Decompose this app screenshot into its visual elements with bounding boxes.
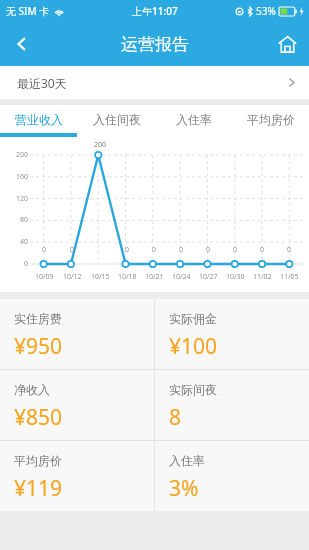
staticText: 3%: [169, 474, 199, 503]
staticText: 0: [233, 245, 238, 255]
staticText: ¥850: [14, 403, 63, 432]
staticText: 运营报告: [121, 34, 189, 55]
button[interactable]: 平均房价: [0, 441, 154, 511]
staticText: 11/05: [280, 272, 299, 282]
staticText: 80: [19, 215, 28, 225]
staticText: 11/02: [253, 272, 272, 282]
staticText: 120: [15, 194, 28, 204]
staticText: ¥950: [14, 332, 63, 361]
staticText: 40: [19, 237, 28, 247]
staticText: 10/24: [172, 272, 191, 282]
staticText: 上午11:07: [132, 4, 178, 18]
staticText: 0: [287, 245, 292, 255]
staticText: 10/09: [35, 272, 54, 282]
staticText: 8: [169, 403, 182, 432]
staticText: 实际佣金: [169, 311, 217, 326]
staticText: 净收入: [14, 382, 50, 397]
staticText: ¥100: [169, 332, 218, 361]
staticText: 最近30天: [17, 75, 67, 91]
staticText: 200: [15, 150, 28, 160]
button[interactable]: 实住房费: [0, 299, 154, 369]
staticText: 实住房费: [14, 311, 62, 326]
staticText: 平均房价: [14, 453, 62, 468]
button[interactable]: 入住率: [155, 105, 232, 133]
button[interactable]: 入住间夜: [78, 105, 155, 133]
button[interactable]: 最近30天: [0, 66, 309, 99]
staticText: 0: [42, 245, 47, 255]
staticText: 200: [94, 140, 107, 150]
button[interactable]: 平均房价: [232, 105, 309, 133]
button[interactable]: 实际佣金: [155, 299, 309, 369]
staticText: 10/18: [118, 272, 137, 282]
staticText: 0: [260, 245, 265, 255]
button[interactable]: 入住率: [155, 441, 309, 511]
staticText: ¥119: [14, 474, 63, 503]
button[interactable]: 营业收入: [0, 105, 78, 133]
staticText: 0: [23, 259, 28, 269]
staticText: 10/12: [63, 272, 82, 282]
staticText: 0: [70, 245, 75, 255]
staticText: 10/15: [91, 272, 110, 282]
staticText: 入住率: [176, 112, 212, 127]
staticText: 营业收入: [15, 112, 63, 127]
staticText: 0: [152, 245, 157, 255]
staticText: 无 SIM 卡: [6, 4, 50, 18]
staticText: 0: [179, 245, 184, 255]
button[interactable]: Back: [0, 22, 44, 66]
staticText: 0: [125, 245, 130, 255]
button[interactable]: 净收入: [0, 370, 154, 440]
staticText: 160: [15, 172, 28, 182]
staticText: 10/21: [145, 272, 164, 282]
staticText: 入住率: [169, 453, 205, 468]
staticText: 平均房价: [247, 112, 295, 127]
staticText: 10/27: [199, 272, 218, 282]
staticText: 0: [206, 245, 211, 255]
staticText: 53%: [256, 4, 276, 18]
staticText: 10/30: [226, 272, 245, 282]
staticText: 实际间夜: [169, 382, 217, 397]
button[interactable]: 实际间夜: [155, 370, 309, 440]
staticText: 入住间夜: [93, 112, 141, 127]
button[interactable]: Home: [265, 22, 309, 66]
